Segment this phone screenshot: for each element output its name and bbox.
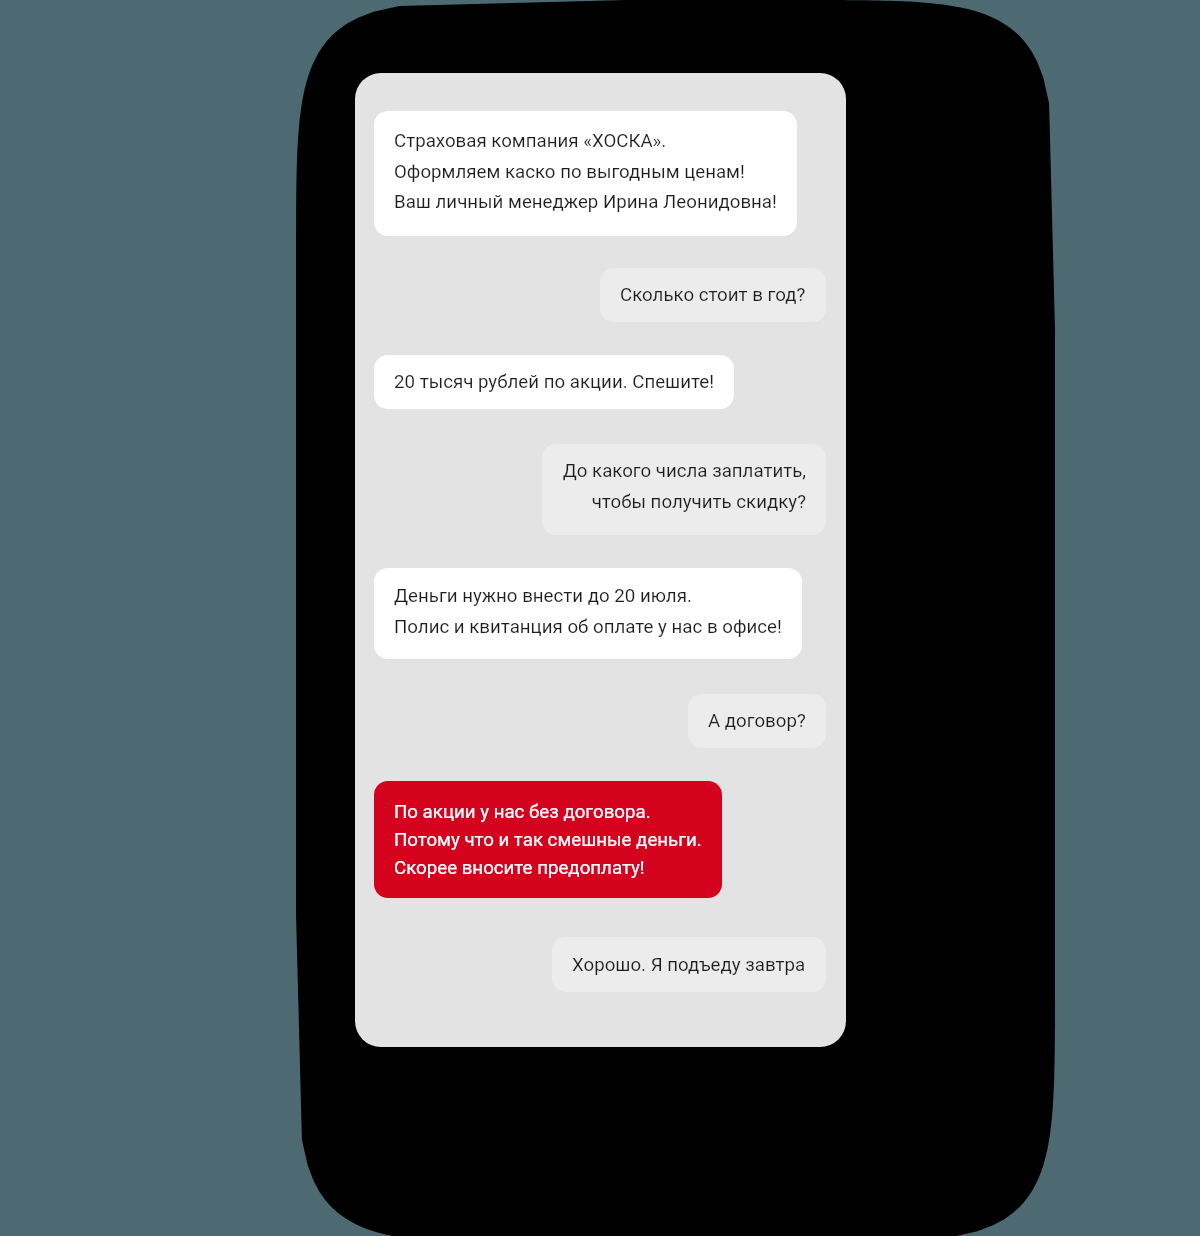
button[interactable]: 20 тысяч рублей по акции. Спешите! <box>374 355 734 409</box>
staticText: Хорошо. Я подъеду завтра <box>572 954 806 976</box>
staticText: 20 тысяч рублей по акции. Спешите! <box>394 371 714 393</box>
button[interactable]: Хорошо. Я подъеду завтра <box>552 937 826 992</box>
other: Phone mockup <box>0 0 1200 1236</box>
staticText: Деньги нужно внести до 20 июля. Полис и … <box>394 585 782 637</box>
button[interactable]: Сколько стоит в год? <box>600 268 826 322</box>
button[interactable]: Деньги нужно внести до 20 июля. Полис и … <box>374 568 802 659</box>
staticText: До какого числа заплатить, чтобы получит… <box>562 460 806 512</box>
staticText: Сколько стоит в год? <box>620 284 806 306</box>
button[interactable]: По акции у нас без договора. Потому что … <box>374 781 722 898</box>
button[interactable]: До какого числа заплатить, чтобы получит… <box>542 444 826 535</box>
button[interactable]: Страховая компания «ХОСКА». Оформляем ка… <box>374 111 797 236</box>
button[interactable]: А договор? <box>688 694 826 748</box>
staticText: А договор? <box>708 710 806 732</box>
staticText: Страховая компания «ХОСКА». Оформляем ка… <box>394 130 777 212</box>
staticText: По акции у нас без договора. Потому что … <box>394 801 702 879</box>
